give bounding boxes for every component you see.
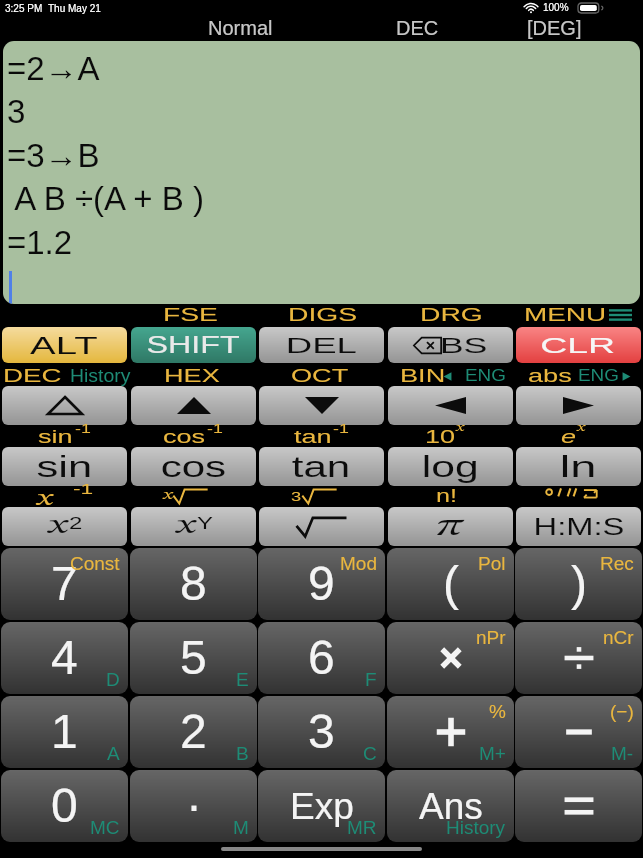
button[interactable]: ) [515,548,642,620]
button[interactable]: Equals [515,770,642,842]
staticText: ) [571,557,587,611]
button[interactable]: log [388,447,513,486]
staticText: 100% [543,2,569,13]
button[interactable]: 7 [1,548,128,620]
staticText: B [236,743,249,764]
staticText: -1 [333,422,349,435]
button[interactable]: CLR [516,327,641,363]
button[interactable]: Minus [515,696,642,768]
button[interactable]: 9 [258,548,385,620]
button[interactable]: Plus [387,696,514,768]
staticText: MC [90,817,120,838]
button[interactable]: Ans [387,770,514,842]
button[interactable]: sin [2,447,127,486]
staticText: HEX [164,366,220,386]
button[interactable]: 2 [130,696,257,768]
button[interactable]: SHIFT [131,327,256,363]
staticText: (−) [610,701,634,722]
staticText: 3 [291,489,302,504]
staticText: 𝑥 [46,513,70,539]
staticText: M+ [479,743,506,764]
staticText: nPr [476,627,506,648]
staticText: 3 [7,93,26,130]
staticText: 8 [180,557,207,611]
staticText: Pol [478,553,506,574]
staticText: 𝑥 [162,489,174,503]
staticText: Y [197,514,213,532]
staticText: Const [70,553,120,574]
button[interactable]: H:M:S [516,507,641,546]
staticText: A [107,743,120,764]
staticText: H:M:S [534,514,624,540]
button[interactable]: Scroll up [2,386,127,425]
staticText: FSE [163,305,219,325]
button[interactable]: ALT [2,327,127,363]
staticText: log [422,451,479,483]
staticText: ( [443,557,459,611]
button[interactable]: 6 [258,622,385,694]
button[interactable]: tan [259,447,384,486]
button[interactable]: Square root [259,507,384,546]
staticText: 𝑥 [455,422,465,434]
button[interactable]: ( [387,548,514,620]
button[interactable]: 0 [1,770,128,842]
button[interactable]: · [130,770,257,842]
button[interactable]: Menu [609,308,632,322]
staticText: =3→B [7,137,100,174]
staticText: Normal [208,17,273,39]
button[interactable]: 𝜋 [388,507,513,546]
staticText: -1 [75,422,91,435]
staticText: 𝑥 [576,422,586,434]
button[interactable]: x to the power y [131,507,256,546]
staticText: ALT [30,332,99,359]
button[interactable]: Exp [258,770,385,842]
button[interactable]: cos [131,447,256,486]
staticText: 𝑥 [35,487,54,510]
staticText: =1.2 [7,224,73,261]
button[interactable]: DEL [259,327,384,363]
staticText: 3:25 PM [5,3,43,14]
staticText: =2→A [7,50,100,87]
staticText: 2 [69,514,84,532]
button[interactable]: 1 [1,696,128,768]
staticText: Mod [340,553,377,574]
button[interactable]: 4 [1,622,128,694]
staticText: BS [440,333,488,358]
staticText: History [70,366,131,386]
staticText: e [561,427,577,447]
staticText: cos [161,451,227,483]
staticText: A B ÷(A + B ) [7,180,204,217]
button[interactable]: Up [131,386,256,425]
staticText: DRG [420,305,483,325]
staticText: M [233,817,249,838]
button[interactable]: Divide [515,622,642,694]
button[interactable]: Down [259,386,384,425]
button[interactable]: ln [516,447,641,486]
button[interactable]: 8 [130,548,257,620]
button[interactable]: 3 [258,696,385,768]
staticText: sin [36,451,93,483]
staticText: 7 [51,557,78,611]
staticText: 0 [51,779,78,833]
staticText: M- [611,743,634,764]
staticText: % [489,701,506,722]
staticText: F [365,669,377,690]
staticText: DEC [3,366,61,386]
staticText: 3 [308,705,335,759]
staticText: 9 [308,557,335,611]
staticText: 4 [51,631,78,685]
button[interactable]: Right [516,386,641,425]
staticText: 1 [51,705,78,759]
button[interactable]: x squared [2,507,127,546]
button[interactable]: 5 [130,622,257,694]
staticText: 𝜋 [436,512,466,542]
staticText: -1 [73,480,94,497]
staticText: abs [528,366,573,386]
button[interactable]: Calculation display [3,41,640,304]
staticText: SHIFT [147,332,240,358]
staticText: 5 [180,631,207,685]
button[interactable]: Multiply [387,622,514,694]
button[interactable]: BS [388,327,513,363]
button[interactable]: Left [388,386,513,425]
staticText: ENG [578,367,619,385]
